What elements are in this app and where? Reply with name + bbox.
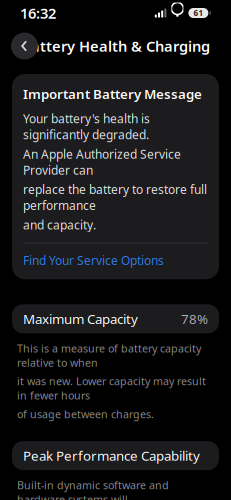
staticText: Built-in dynamic software and hardware s… (17, 478, 169, 500)
staticText: Maximum Capacity (23, 310, 138, 328)
staticText: 61 (193, 8, 203, 18)
button[interactable]: Find Your Service Options (23, 243, 208, 277)
staticText: Your battery's health is significantly d… (23, 111, 150, 143)
staticText: of usage between charges. (17, 407, 154, 421)
staticText: Battery Health & Charging (21, 36, 210, 56)
staticText: Important Battery Message (23, 85, 202, 103)
button[interactable]: Peak Performance Capability (12, 441, 219, 470)
staticText: and capacity. (23, 217, 96, 233)
staticText: An Apple Authorized Service Provider can (23, 146, 181, 178)
button[interactable]: Maximum Capacity (12, 304, 219, 333)
staticText: 16:32 (20, 3, 56, 23)
staticText: it was new. Lower capacity may result in… (17, 374, 206, 402)
staticText: Find Your Service Options (23, 252, 164, 268)
staticText: This is a measure of battery capacity re… (17, 341, 201, 370)
button[interactable]: Back (11, 32, 38, 59)
staticText: replace the battery to restore full perf… (23, 181, 207, 213)
staticText: Peak Performance Capability (23, 447, 200, 464)
staticText: 78% (181, 310, 208, 328)
